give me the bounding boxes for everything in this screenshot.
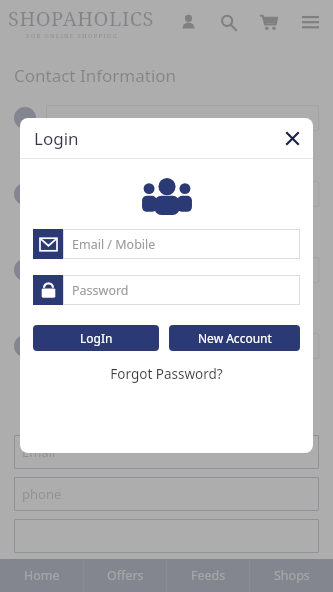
- staticText: Login: [34, 127, 79, 150]
- button[interactable]: Cart: [255, 9, 281, 35]
- staticText: Email / Mobile: [72, 236, 156, 253]
- button[interactable]: Close: [279, 125, 305, 151]
- staticText: New Account: [198, 330, 272, 346]
- staticText: SHOPAHOLICS: [8, 5, 154, 32]
- button[interactable]: Shops: [250, 559, 333, 592]
- staticText: Email: [22, 443, 56, 461]
- button[interactable]: Search: [215, 9, 241, 35]
- button[interactable]: Forgot Password?: [33, 365, 300, 383]
- staticText: Forgot Password?: [110, 365, 223, 383]
- button[interactable]: Feeds: [167, 559, 250, 592]
- staticText: Password: [72, 282, 129, 299]
- button[interactable]: Email / Mobile: [33, 229, 300, 259]
- button[interactable]: Account: [175, 9, 201, 35]
- button[interactable]: Password: [33, 275, 300, 305]
- staticText: Home: [24, 567, 60, 584]
- button[interactable]: LogIn: [33, 325, 159, 351]
- staticText: phone: [22, 485, 62, 503]
- staticText: LogIn: [80, 330, 113, 346]
- button[interactable]: Home: [0, 559, 84, 592]
- button[interactable]: Offers: [84, 559, 167, 592]
- staticText: Feeds: [191, 567, 226, 584]
- staticText: Contact Information: [14, 64, 177, 87]
- staticText: Shops: [274, 567, 310, 584]
- staticText: FOR ONLINE SHOPPING: [26, 32, 118, 40]
- button[interactable]: New Account: [169, 325, 300, 351]
- staticText: Offers: [107, 567, 144, 584]
- button[interactable]: Menu: [297, 9, 323, 35]
